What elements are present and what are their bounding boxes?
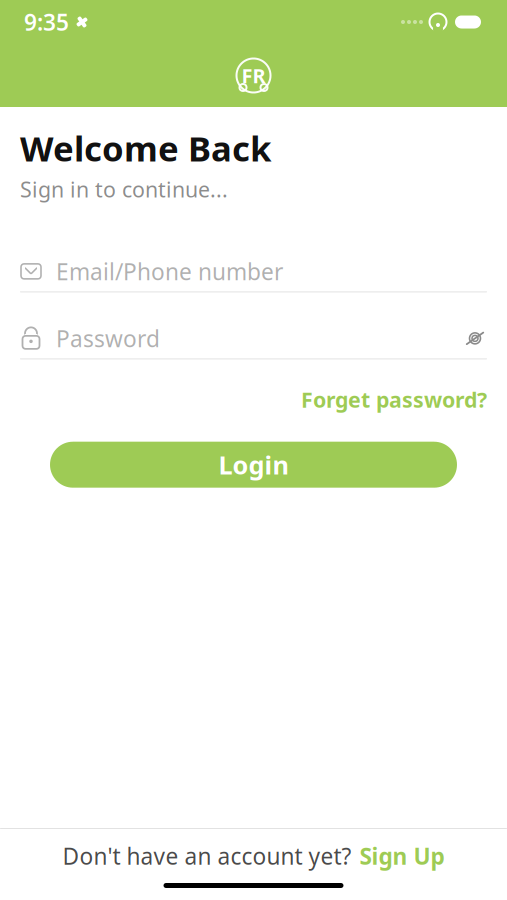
- staticText: Password: [56, 323, 160, 353]
- button[interactable]: Forget password?: [301, 379, 487, 420]
- button[interactable]: Don't have an account yet?: [0, 829, 507, 883]
- staticText: 9:35: [24, 7, 69, 37]
- staticText: Login: [218, 448, 288, 481]
- staticText: FR: [241, 62, 265, 89]
- staticText: Email/Phone number: [56, 256, 283, 286]
- staticText: Don't have an account yet?: [62, 841, 351, 871]
- staticText: Sign in to continue...: [20, 175, 228, 203]
- button[interactable]: Login: [50, 442, 457, 488]
- button[interactable]: Show password: [455, 328, 487, 348]
- staticText: Forget password?: [301, 385, 487, 414]
- staticText: Sign Up: [359, 841, 444, 871]
- staticText: Welcome Back: [20, 125, 271, 171]
